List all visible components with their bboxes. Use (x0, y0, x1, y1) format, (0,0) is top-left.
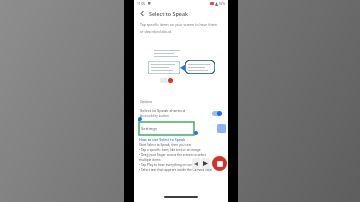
button[interactable]: Navigate up (138, 9, 147, 18)
staticText: Select to Speak (149, 10, 188, 17)
staticText: Options (140, 100, 153, 104)
staticText: multiple items (139, 158, 161, 162)
staticText: • Select text that appears inside the Ca… (139, 168, 212, 172)
button[interactable]: Settings (139, 122, 194, 135)
staticText: Tap specific items on your screen to hav… (140, 22, 222, 27)
button[interactable]: Stop recording (212, 156, 227, 171)
button[interactable]: Previous (192, 158, 200, 169)
staticText: or described aloud. (140, 29, 172, 34)
staticText: • Tap a specific item, like text or an i… (139, 148, 201, 152)
button[interactable]: Accessibility menu (217, 124, 226, 133)
staticText: • Drag your finger across the screen to … (139, 153, 207, 157)
button[interactable]: Select to Speak shortcut (134, 105, 228, 121)
staticText: How to use Select to Speak (139, 137, 186, 142)
staticText: 92% (219, 2, 225, 6)
staticText: Select to Speak shortcut (140, 108, 186, 113)
staticText: Accessibility button (140, 114, 169, 118)
staticText: Start Select to Speak, then you can: (139, 143, 192, 147)
staticText: 11:06 (137, 2, 146, 6)
button[interactable]: Play (201, 158, 210, 169)
staticText: Settings (141, 126, 157, 132)
staticText: • Tap Play to hear everything on screen (139, 163, 198, 167)
